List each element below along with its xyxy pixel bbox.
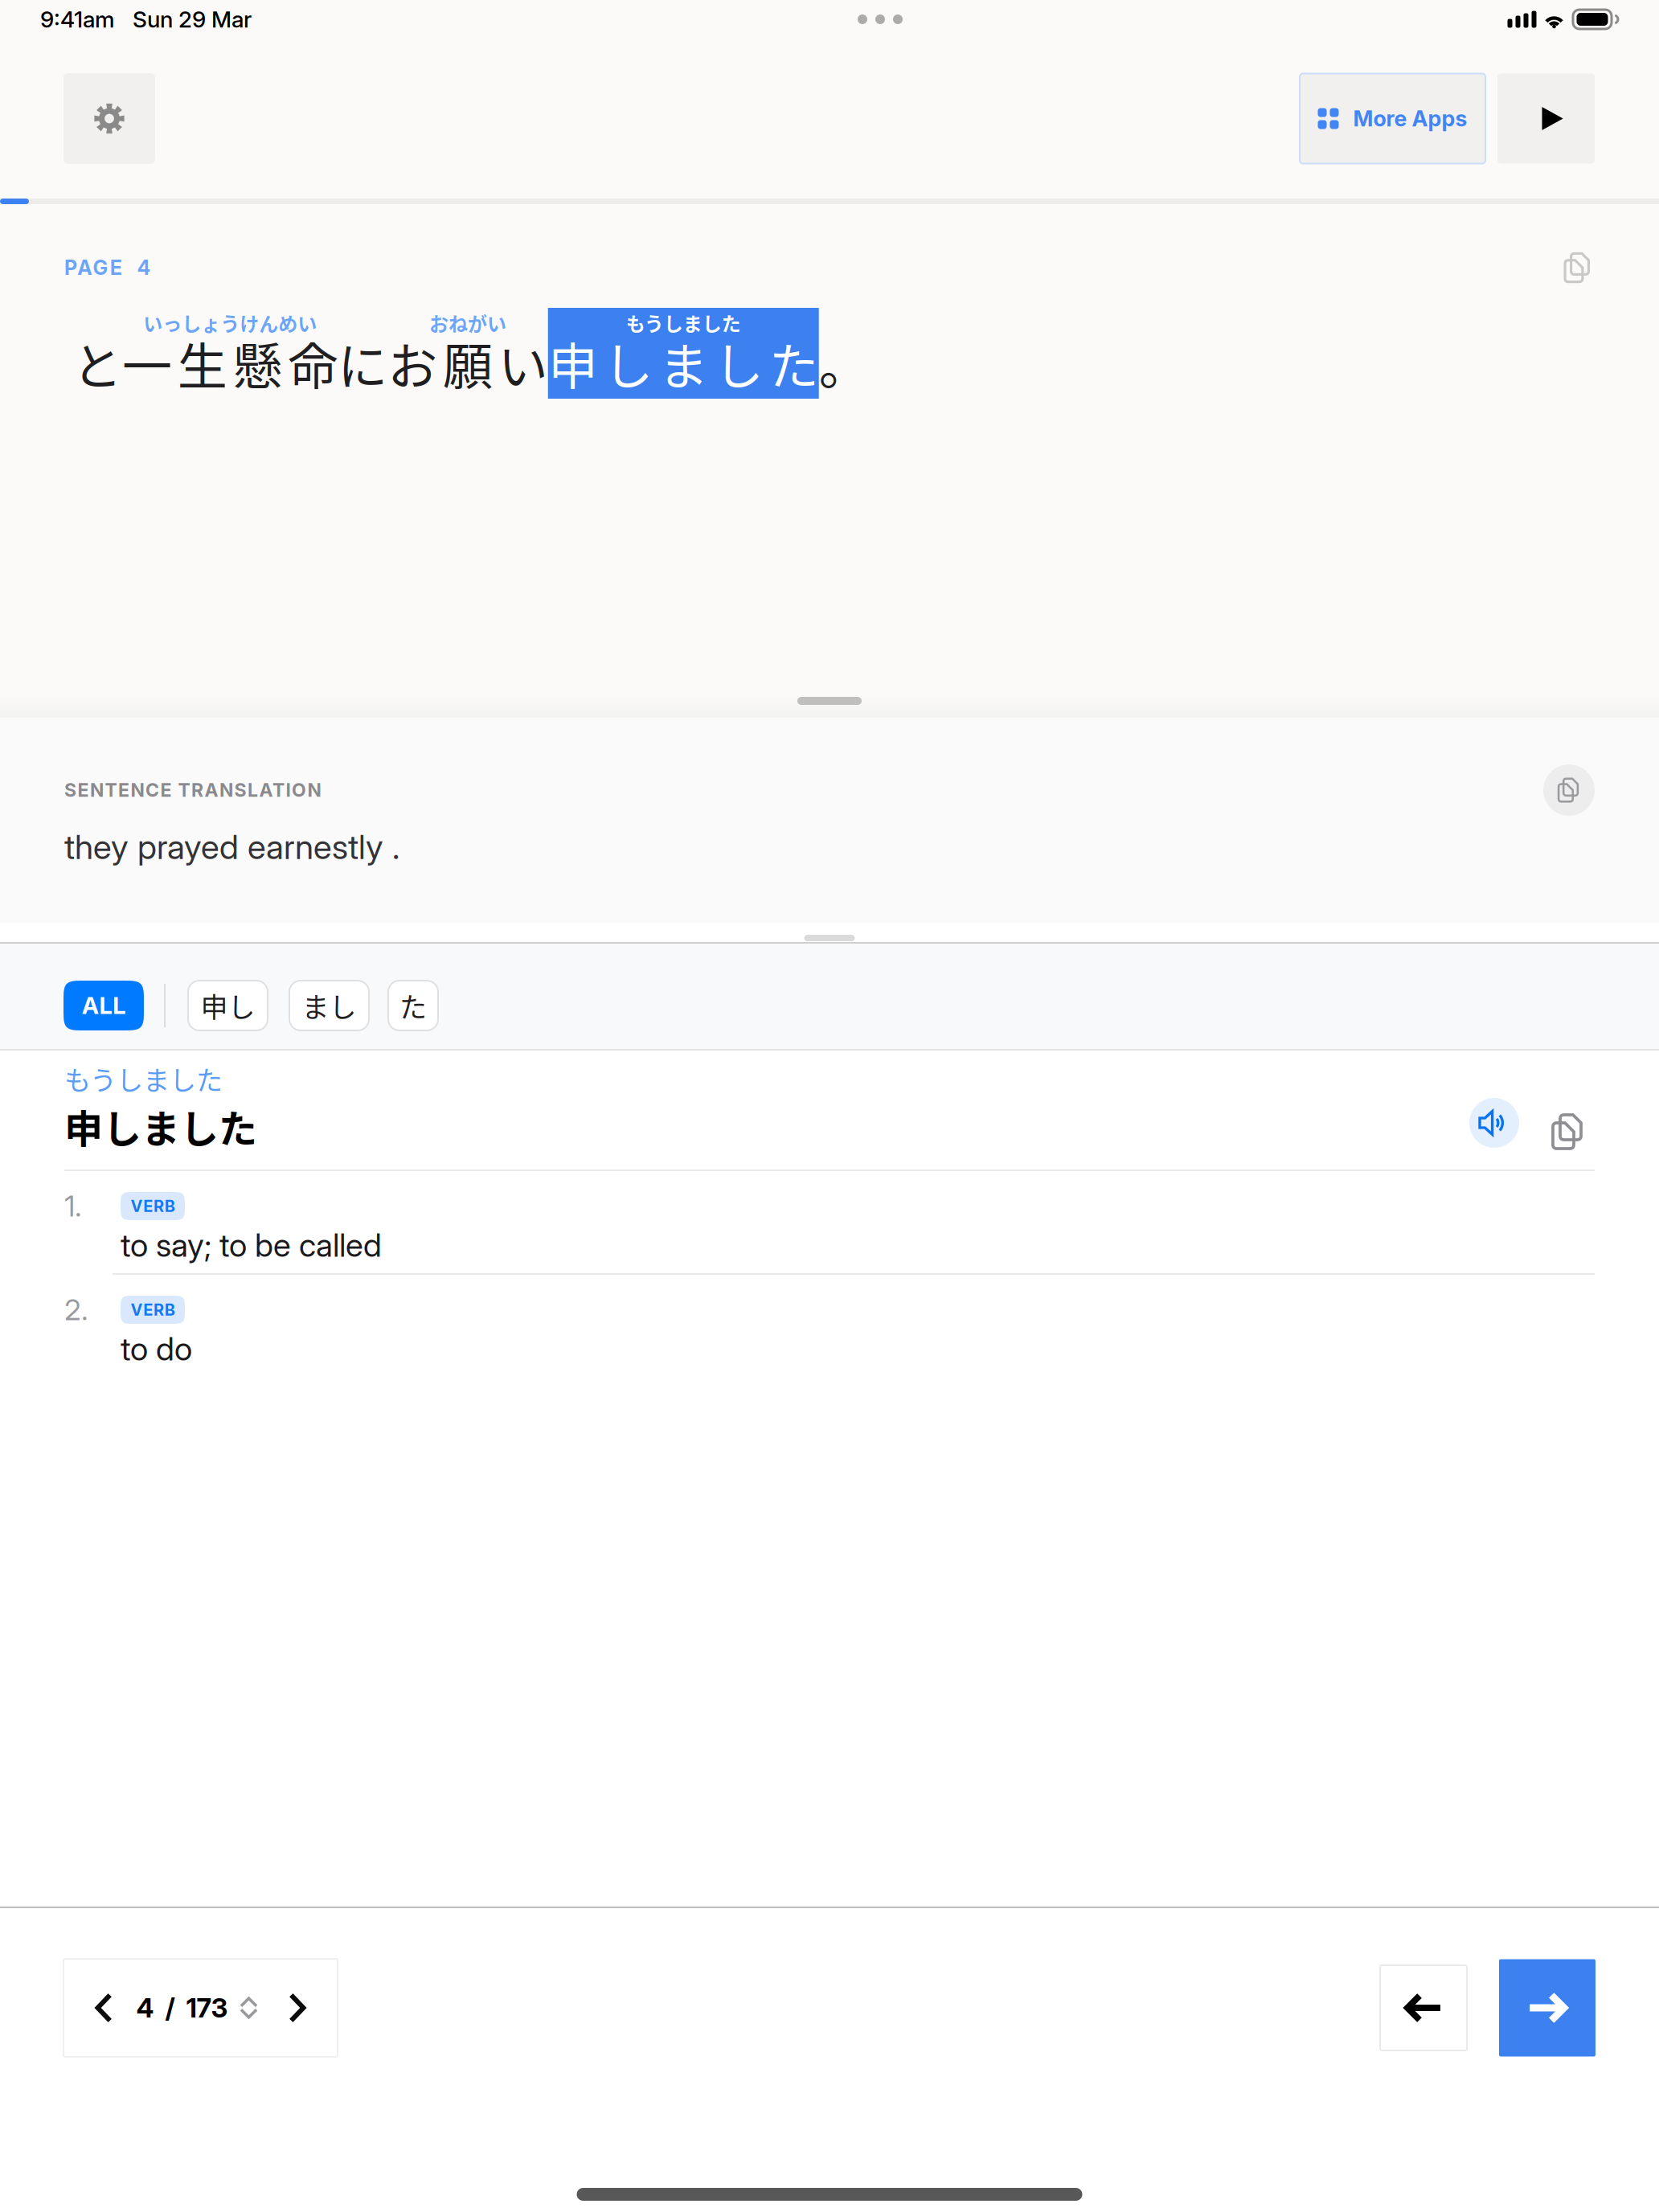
staticText: ALL — [82, 991, 126, 1020]
staticText: to do — [121, 1329, 192, 1368]
staticText: おねがい — [429, 309, 506, 337]
staticText: 申し — [201, 986, 255, 1025]
staticText: もうしました — [626, 309, 741, 337]
staticText: PAGE 4 — [64, 256, 151, 280]
staticText: VERB — [131, 1196, 175, 1216]
staticText: More Apps — [1353, 105, 1467, 132]
staticText: VERB — [131, 1300, 175, 1319]
staticText: 一生懸命 — [122, 327, 338, 399]
button[interactable]: Next page — [265, 1960, 329, 2056]
staticText: に — [338, 327, 388, 399]
button[interactable]: More Apps — [1300, 74, 1485, 164]
staticText: 1. — [64, 1189, 82, 1224]
staticText: 4 / 173 — [136, 1992, 228, 2024]
staticText: と — [72, 327, 122, 399]
button[interactable]: Back — [1380, 1965, 1467, 2050]
staticText: お願い — [388, 327, 548, 399]
staticText: まし — [302, 986, 356, 1025]
staticText: いっしょうけんめい — [143, 309, 317, 337]
staticText: 申しました — [548, 327, 819, 399]
staticText: Sun 29 Mar — [133, 6, 252, 33]
staticText: to say; to be called — [121, 1226, 382, 1265]
staticText: 2. — [64, 1292, 88, 1327]
button[interactable]: Copy sentence — [1561, 251, 1595, 285]
button[interactable]: ALL — [63, 981, 144, 1030]
button[interactable]: Copy word — [1555, 1103, 1595, 1151]
staticText: た — [399, 986, 427, 1025]
button[interactable]: Settings — [63, 73, 155, 164]
staticText: SENTENCE TRANSLATION — [64, 779, 321, 801]
staticText: 。 — [819, 327, 869, 399]
button[interactable]: 申し — [188, 981, 268, 1030]
staticText: 申しました — [64, 1098, 257, 1154]
button[interactable]: た — [388, 981, 438, 1030]
button[interactable]: Previous page — [72, 1960, 136, 2056]
button[interactable]: Copy translation — [1543, 764, 1595, 816]
staticText: もうしました — [64, 1059, 223, 1098]
button[interactable]: Next — [1499, 1959, 1596, 2056]
staticText: 9:41am — [40, 6, 115, 33]
button[interactable]: Play pronunciation — [1469, 1098, 1519, 1151]
staticText: they prayed earnestly . — [64, 826, 399, 867]
button[interactable]: Play audio — [1497, 74, 1595, 164]
button[interactable]: まし — [289, 981, 369, 1030]
